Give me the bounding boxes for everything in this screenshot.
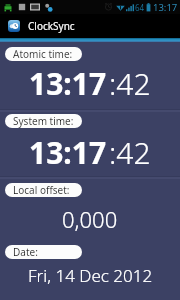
staticText: Date: [13,245,38,259]
staticText: Fri, 14 Dec 2012 [28,264,153,287]
other: ClockSync app icon [8,20,20,32]
staticText: :42 [109,63,151,104]
staticText: Local offset: [13,183,70,197]
staticText: 64 [135,2,145,12]
button[interactable]: Local offset: [5,183,82,197]
staticText: 13:17 [29,63,107,104]
staticText: 0,000 [62,204,118,234]
button[interactable]: System time: [5,114,82,128]
staticText: ClockSync [28,19,75,33]
button[interactable]: Atomic time: [5,47,82,61]
staticText: :42 [109,132,151,173]
staticText: Atomic time: [13,47,73,61]
staticText: 13:17 [29,132,107,173]
staticText: System time: [13,114,74,128]
staticText: 13:17 [153,1,178,13]
button[interactable]: Date: [5,245,82,259]
